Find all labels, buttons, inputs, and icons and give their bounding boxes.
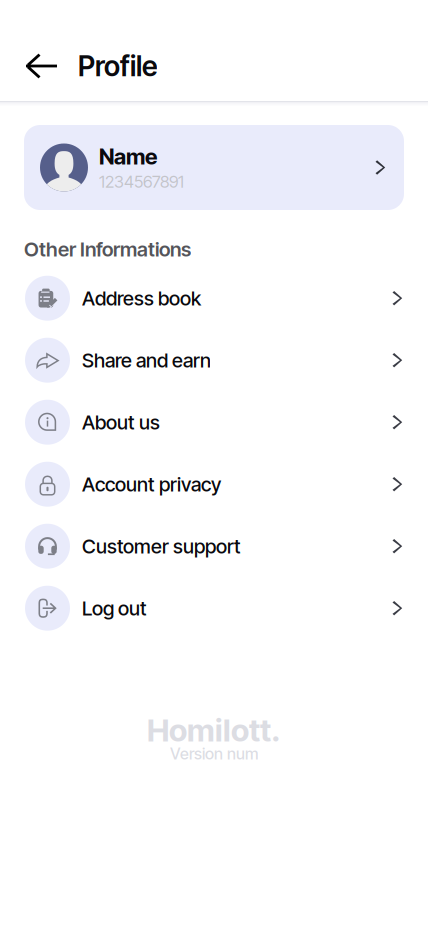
staticText: Homilott. [147,711,281,749]
staticText: Share and earn [82,348,211,372]
button[interactable]: Back [25,44,58,88]
button[interactable]: Share and earn [0,329,428,391]
staticText: Account privacy [82,472,221,496]
staticText: Profile [78,49,157,83]
button[interactable]: Address book [0,267,428,329]
button[interactable]: Customer support [0,515,428,577]
staticText: 1234567891 [99,172,184,192]
button[interactable]: Account privacy [0,453,428,515]
button[interactable]: About us [0,391,428,453]
staticText: Customer support [82,534,241,558]
staticText: Version num [170,744,258,763]
staticText: Name [99,143,157,170]
staticText: Address book [82,286,201,310]
button[interactable]: Log out [0,577,428,639]
staticText: Log out [82,596,147,620]
staticText: Other Informations [24,237,191,261]
button[interactable]: Name [24,125,404,210]
staticText: About us [82,410,160,434]
